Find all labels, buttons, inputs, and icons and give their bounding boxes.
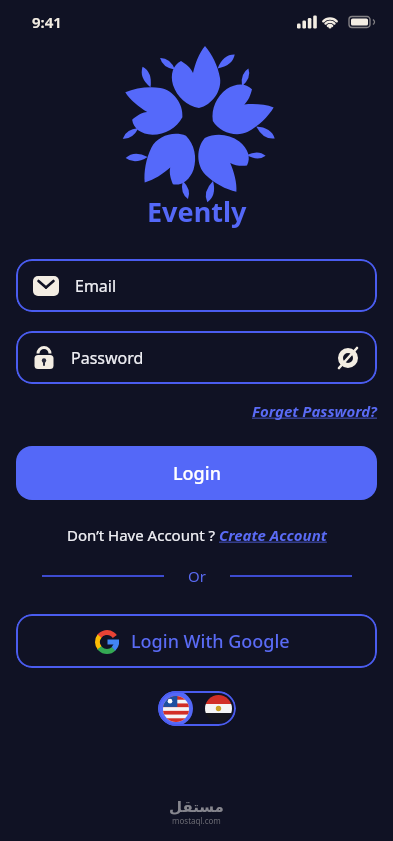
button[interactable]: Login With Google [16,614,377,668]
button[interactable]: Password [16,331,377,384]
button[interactable] [158,691,236,726]
staticText: Evently [147,193,247,230]
staticText: 9:41 [32,12,62,32]
staticText: Email [75,275,117,297]
staticText: Login With Google [131,629,290,654]
staticText: Password [71,347,144,369]
staticText: mostaql.com [172,815,221,826]
staticText: Or [188,566,206,586]
button[interactable]: Email [16,259,377,312]
button[interactable]: Forget Password? [252,401,377,421]
staticText: Login [173,461,221,486]
button[interactable]: Login [16,446,377,500]
button[interactable]: Create Account [219,525,327,545]
staticText: مستقل [169,798,224,815]
staticText: Don’t Have Account ? [67,525,219,545]
